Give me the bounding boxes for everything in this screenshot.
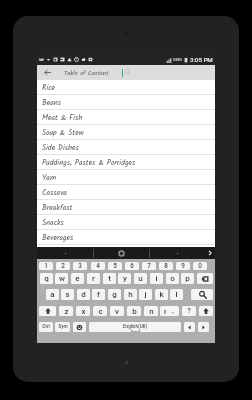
button[interactable]: 3 (73, 262, 87, 270)
staticText: p (185, 274, 190, 283)
staticText: e (75, 274, 80, 283)
button[interactable]: m (160, 306, 174, 316)
button[interactable]: 8 (159, 262, 173, 270)
button[interactable]: x (76, 306, 90, 316)
button[interactable]: 1 (39, 262, 53, 270)
button[interactable]: p (181, 273, 194, 284)
staticText: b (132, 307, 137, 316)
button[interactable]: o (166, 273, 179, 284)
button[interactable]: Beverages (37, 230, 215, 245)
button[interactable]: l (170, 289, 183, 300)
button[interactable]: 9 (176, 262, 190, 270)
button[interactable]: Shift (199, 306, 213, 316)
button[interactable]: Search (191, 289, 213, 300)
button[interactable] (37, 247, 93, 259)
button[interactable]: Beans (37, 95, 215, 110)
button[interactable]: u (134, 273, 147, 284)
button[interactable]: 5 (108, 262, 122, 270)
staticText: Side Dishes (42, 142, 79, 154)
button[interactable]: 7 (142, 262, 156, 270)
button[interactable]: t (103, 273, 116, 284)
button[interactable]: y (118, 273, 131, 284)
staticText: 1 (44, 262, 48, 270)
staticText: l (175, 290, 178, 299)
button[interactable]: c (93, 306, 107, 316)
button[interactable]: e (71, 273, 84, 284)
button[interactable]: Yam (37, 170, 215, 185)
button[interactable]: ? (182, 306, 196, 316)
button[interactable]: d (77, 289, 90, 300)
staticText: o (170, 274, 175, 283)
staticText: Soup & Stew (42, 127, 84, 139)
button[interactable]: More suggestions (205, 247, 215, 259)
staticText: 4 (96, 262, 100, 270)
button[interactable]: i (150, 273, 163, 284)
button[interactable]: Puddings, Pastes & Porridges (37, 155, 215, 170)
button[interactable]: f (92, 289, 105, 300)
button[interactable]: b (127, 306, 141, 316)
button[interactable]: Move right (198, 322, 209, 332)
button[interactable]: Snacks (37, 215, 215, 230)
button[interactable]: Cassava (37, 185, 215, 200)
staticText: Breakfast (42, 202, 73, 214)
staticText: r (92, 274, 95, 283)
staticText: SING (173, 57, 183, 62)
staticText: 5 (113, 262, 117, 270)
staticText: 6 (130, 262, 134, 270)
button[interactable]: 2 (56, 262, 70, 270)
button[interactable]: Soup & Stew (37, 125, 215, 140)
staticText: h (128, 290, 133, 299)
staticText: Yam (42, 172, 56, 184)
staticText: 2 (61, 262, 65, 270)
button[interactable]: a (46, 289, 59, 300)
button[interactable]: Sym (55, 322, 70, 332)
button[interactable]: 6 (125, 262, 139, 270)
button[interactable]: Search (119, 65, 215, 80)
button[interactable]: z (59, 306, 73, 316)
staticText: 7 (147, 262, 151, 270)
staticText: Table of Content (64, 68, 109, 78)
staticText: g (112, 290, 117, 299)
button[interactable]: Move left (184, 322, 195, 332)
staticText: 3 (78, 262, 82, 270)
button[interactable]: Navigate up (39, 65, 55, 80)
button[interactable]: g (108, 289, 121, 300)
button[interactable]: v (110, 306, 124, 316)
staticText: w (59, 274, 65, 283)
button[interactable]: Breakfast (37, 200, 215, 215)
button[interactable]: s (61, 289, 74, 300)
staticText: ., (171, 308, 174, 314)
staticText: Meat & Fish (42, 112, 83, 124)
button[interactable]: w (55, 273, 68, 284)
staticText: z (64, 307, 69, 316)
staticText: y (123, 274, 127, 283)
staticText: 0 (198, 262, 202, 270)
button[interactable]: j (139, 289, 152, 300)
staticText: 8 (164, 262, 168, 270)
button[interactable]: 4 (91, 262, 105, 270)
button[interactable]: ., (166, 306, 179, 316)
button[interactable]: n (144, 306, 158, 316)
staticText: Rice (42, 82, 56, 94)
button[interactable]: Shift (39, 306, 56, 316)
button[interactable] (150, 247, 205, 259)
button[interactable]: Backspace (197, 273, 213, 284)
staticText: i (155, 274, 158, 283)
staticText: English(UK) (123, 324, 148, 329)
button[interactable]: Meat & Fish (37, 110, 215, 125)
button[interactable] (94, 247, 149, 259)
staticText: Puddings, Pastes & Porridges (42, 157, 136, 169)
staticText: Beans (42, 97, 62, 109)
button[interactable]: Side Dishes (37, 140, 215, 155)
button[interactable]: q (40, 273, 53, 284)
button[interactable]: r (87, 273, 100, 284)
button[interactable]: Rice (37, 80, 215, 95)
staticText: c (98, 307, 103, 316)
staticText: k (159, 290, 164, 299)
button[interactable]: k (155, 289, 168, 300)
button[interactable]: 0 (193, 262, 207, 270)
button[interactable]: Space (89, 322, 181, 332)
button[interactable]: Emoji (73, 322, 86, 332)
button[interactable]: h (124, 289, 137, 300)
button[interactable]: Ctrl (39, 322, 53, 332)
